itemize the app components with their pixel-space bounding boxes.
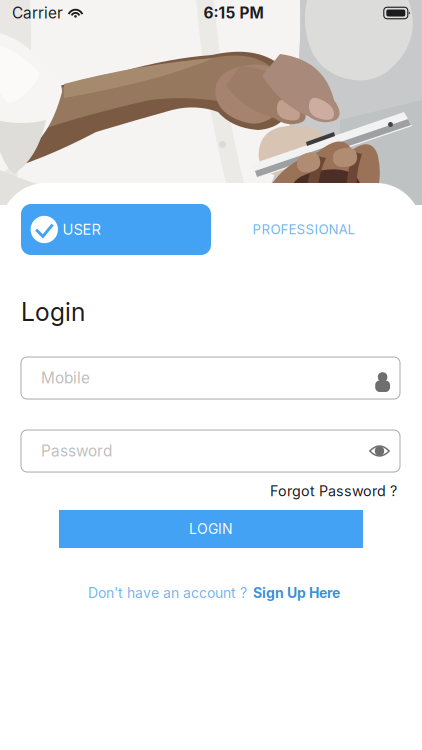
staticText: Login [21, 297, 85, 327]
button[interactable]: USER [21, 204, 211, 255]
staticText: Password [41, 442, 112, 460]
staticText: Carrier [12, 4, 63, 22]
staticText: PROFESSIONAL [252, 221, 355, 237]
staticText: 6:15 PM [203, 4, 263, 22]
button[interactable]: Don't have an account ? [84, 583, 344, 603]
staticText: Forgot Password ? [270, 482, 397, 500]
staticText: Don't have an account ? [88, 584, 247, 601]
staticText: Sign Up Here [253, 584, 340, 601]
button[interactable]: Forgot Password ? [267, 480, 397, 502]
staticText: USER [62, 221, 100, 238]
button[interactable]: LOGIN [59, 510, 363, 548]
staticText: Mobile [41, 369, 90, 387]
button[interactable]: PROFESSIONAL [239, 204, 369, 255]
staticText: LOGIN [189, 520, 233, 537]
